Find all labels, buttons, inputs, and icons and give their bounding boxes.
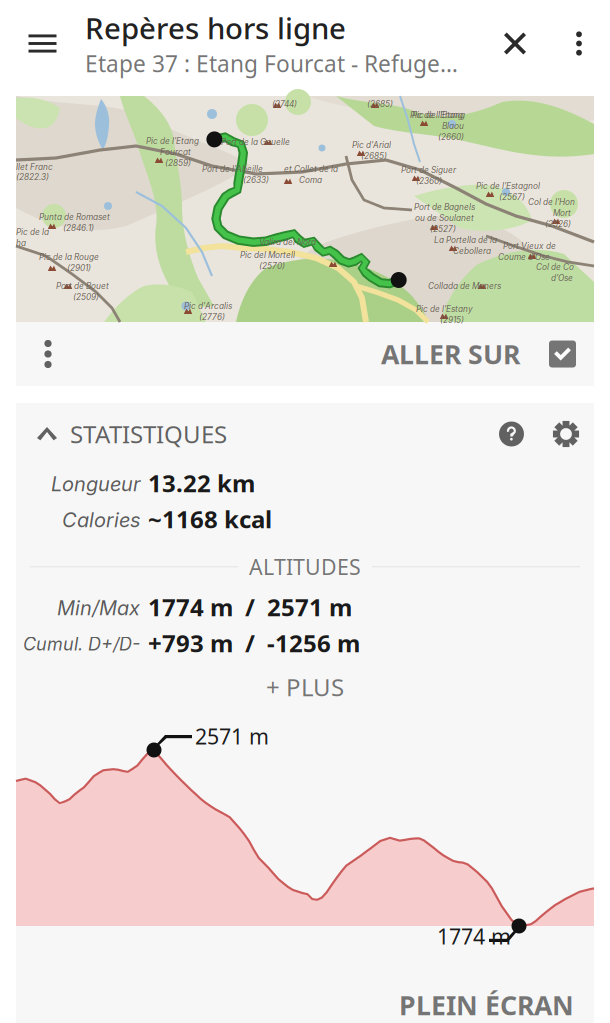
- staticText: Valira del Nord: [259, 237, 316, 247]
- staticText: Fourcat: [160, 147, 191, 157]
- staticText: Pic de la: [16, 227, 49, 237]
- staticText: Pic del Mortell: [240, 250, 295, 260]
- staticText: 1774 m: [437, 922, 511, 950]
- staticText: (2744): [272, 99, 297, 109]
- button[interactable]: ALLER SUR: [381, 322, 594, 386]
- staticText: Etape 37 : Etang Fourcat - Refuge…: [85, 48, 458, 78]
- staticText: (2360): [416, 176, 442, 186]
- staticText: La Portella de la: [434, 235, 497, 245]
- staticText: +793 m / -1256 m: [148, 627, 360, 659]
- staticText: (2685): [361, 151, 387, 161]
- staticText: Pic de l'Estany: [416, 304, 473, 314]
- staticText: Collada de Meners: [428, 281, 501, 291]
- staticText: (2901): [67, 263, 91, 273]
- staticText: Mort: [553, 208, 571, 218]
- staticText: ~1168 kcal: [148, 503, 272, 535]
- staticText: + PLUS: [266, 671, 344, 703]
- staticText: Coume d'Ose: [498, 252, 550, 262]
- staticText: Port de la Gouelle: [221, 137, 290, 147]
- staticText: Pic de la Rouge: [39, 252, 99, 262]
- button[interactable]: Menu: [0, 0, 85, 87]
- staticText: Pic de l'Etang: [146, 136, 199, 146]
- staticText: 1774 m / 2571 m: [148, 591, 352, 623]
- staticText: ou de Soulanet: [415, 213, 474, 223]
- staticText: 2571 m: [195, 722, 269, 750]
- staticText: Pic d'Arcalis: [184, 301, 232, 311]
- button[interactable]: PLEIN ÉCRAN: [16, 977, 594, 1023]
- staticText: (2527): [430, 224, 456, 234]
- staticText: Port de l'Abeille: [202, 164, 263, 174]
- button[interactable]: Réglages: [538, 403, 594, 465]
- staticText: ALTITUDES: [249, 553, 361, 581]
- staticText: (2660): [438, 132, 464, 142]
- staticText: (2570): [259, 261, 285, 271]
- staticText: Col de Co: [536, 262, 574, 272]
- staticText: ha: [16, 238, 26, 248]
- staticText: Longueur: [51, 472, 140, 496]
- staticText: (2509): [73, 292, 99, 302]
- staticText: Port de Bagnels: [414, 202, 475, 212]
- button[interactable]: STATISTIQUES: [16, 403, 227, 465]
- staticText: Min/Max: [57, 596, 140, 620]
- staticText: d'Ose: [551, 273, 573, 283]
- staticText: llet Franc: [16, 162, 53, 172]
- staticText: Pic d'Arial: [352, 140, 391, 150]
- staticText: STATISTIQUES: [70, 418, 227, 450]
- staticText: (2776): [199, 312, 225, 322]
- staticText: Port Vieux de: [503, 241, 556, 251]
- button[interactable]: + PLUS: [16, 661, 594, 713]
- staticText: ALLER SUR: [381, 336, 520, 372]
- staticText: Coma: [299, 175, 322, 185]
- button[interactable]: Options de la carte: [16, 322, 80, 386]
- button[interactable]: Aide: [485, 403, 538, 465]
- staticText: Cebollera: [453, 246, 491, 256]
- staticText: (2859): [165, 158, 191, 168]
- staticText: PLEIN ÉCRAN: [399, 987, 574, 1023]
- staticText: 13.22 km: [148, 467, 255, 499]
- staticText: Blaou: [442, 121, 464, 131]
- staticText: Pic de l'Étang: [410, 110, 463, 120]
- staticText: Repères hors ligne: [85, 8, 346, 47]
- staticText: et Collet de la: [284, 164, 338, 174]
- staticText: Port de Bouet: [56, 281, 109, 291]
- staticText: (2822.3): [16, 172, 49, 182]
- staticText: Col de l'Hon: [528, 197, 575, 207]
- staticText: Cumul. D+/D-: [23, 633, 140, 655]
- staticText: Pic de l'Étang: [412, 110, 465, 120]
- button[interactable]: Fermer: [482, 0, 548, 87]
- staticText: (2915): [440, 315, 464, 325]
- staticText: Pic de l'Estagnol: [476, 181, 540, 191]
- staticText: (2567): [499, 192, 525, 202]
- staticText: (2846.1): [63, 223, 94, 233]
- staticText: Port de Siguer: [401, 165, 456, 175]
- button[interactable]: Plus d'options: [548, 0, 610, 87]
- staticText: (2526): [545, 219, 571, 229]
- staticText: Calories: [62, 508, 140, 532]
- staticText: (2633): [243, 175, 269, 185]
- staticText: (2685): [367, 99, 393, 109]
- staticText: Punta de Romaset: [39, 212, 110, 222]
